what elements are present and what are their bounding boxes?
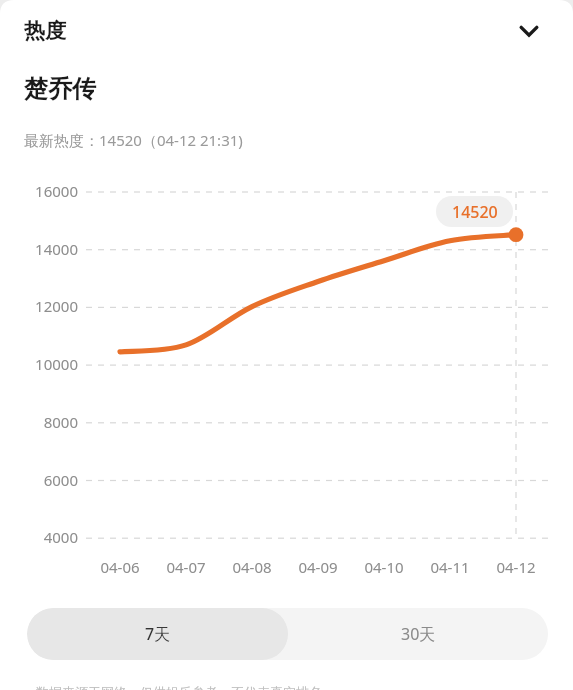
staticText: 4000 xyxy=(43,527,78,547)
button[interactable]: 热度 xyxy=(0,0,573,62)
button[interactable]: 7天 xyxy=(27,608,288,660)
staticText: 04-07 xyxy=(166,557,206,577)
staticText: 04-08 xyxy=(232,557,272,577)
staticText: 30天 xyxy=(401,623,436,645)
staticText: 7天 xyxy=(145,623,171,645)
button[interactable]: 30天 xyxy=(288,608,548,660)
button[interactable]: Collapse xyxy=(505,7,553,55)
staticText: 热度 xyxy=(24,18,66,44)
staticText: 12000 xyxy=(35,296,78,316)
staticText: 04-10 xyxy=(364,557,404,577)
staticText: 楚乔传 xyxy=(24,74,96,104)
staticText: 6000 xyxy=(43,470,78,490)
staticText: 16000 xyxy=(35,181,78,201)
staticText: 04-06 xyxy=(100,557,140,577)
staticText: 最新热度：14520（04-12 21:31) xyxy=(24,130,243,150)
staticText: 04-09 xyxy=(298,557,338,577)
staticText: 04-12 xyxy=(496,557,536,577)
staticText: 14520 xyxy=(452,201,498,223)
staticText: 04-11 xyxy=(430,557,470,577)
staticText: 8000 xyxy=(43,412,78,432)
staticText: 14000 xyxy=(35,239,78,259)
staticText: 10000 xyxy=(35,354,78,374)
staticText: 数据来源于网络，仅供娱乐参考，不代表真实排名 xyxy=(36,684,322,690)
